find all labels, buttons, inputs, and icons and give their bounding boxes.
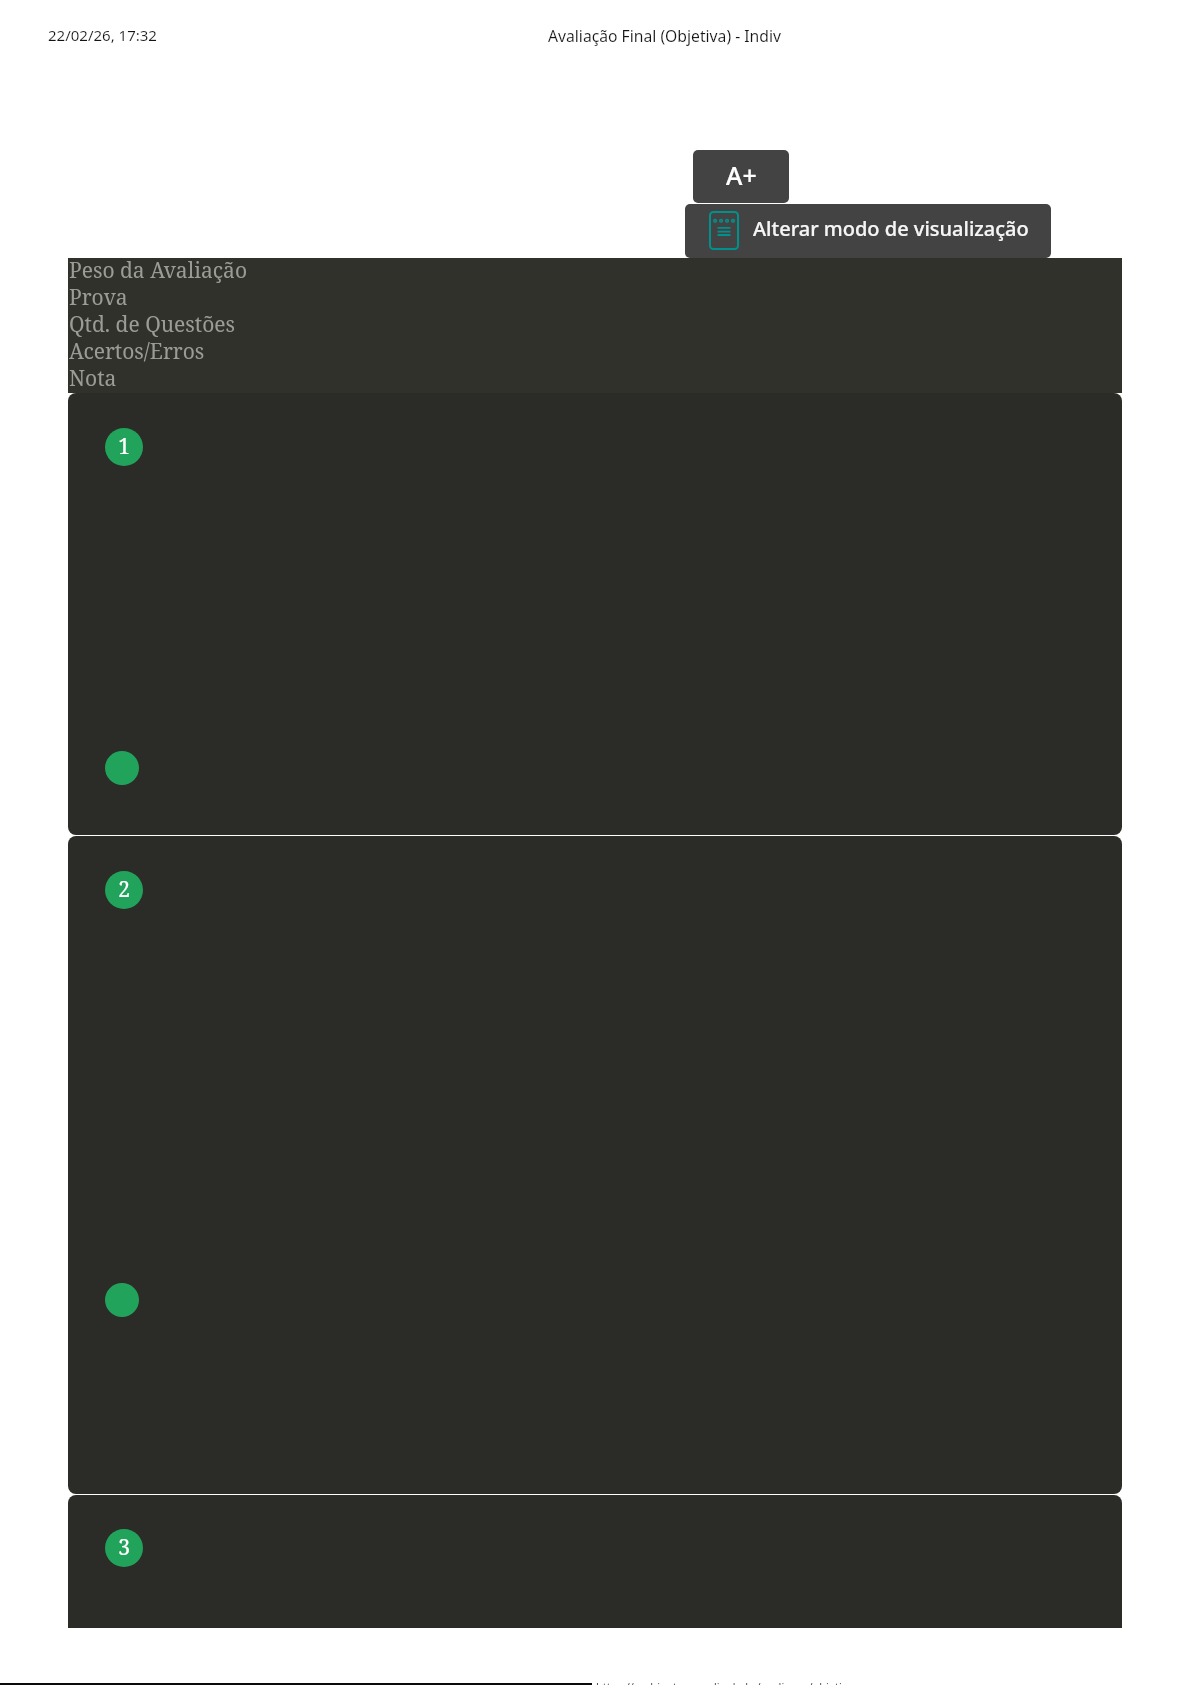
staticText: A+ — [726, 158, 757, 192]
button[interactable]: Aumentar fonte — [693, 150, 789, 203]
other: Alterar modo de visualização — [709, 211, 739, 250]
staticText: 1 — [118, 432, 130, 461]
staticText: 2 — [118, 875, 130, 904]
staticText: 3 — [118, 1533, 130, 1562]
button[interactable]: Alterar modo de visualização — [685, 204, 1051, 258]
button[interactable]: 2 — [68, 836, 1122, 1494]
staticText: 22/02/26, 17:32 — [48, 25, 157, 45]
button[interactable]: 3 — [68, 1495, 1122, 1628]
staticText: Avaliação Final (Objetiva) - Indiv — [548, 25, 781, 46]
button[interactable]: 1 — [68, 393, 1122, 835]
staticText: Alterar modo de visualização — [753, 215, 1029, 242]
staticText: https://ambiente.mundi.edu.br/avaliacao/… — [596, 1679, 854, 1685]
staticText: Peso da Avaliação Prova Qtd. de Questões… — [69, 256, 247, 391]
